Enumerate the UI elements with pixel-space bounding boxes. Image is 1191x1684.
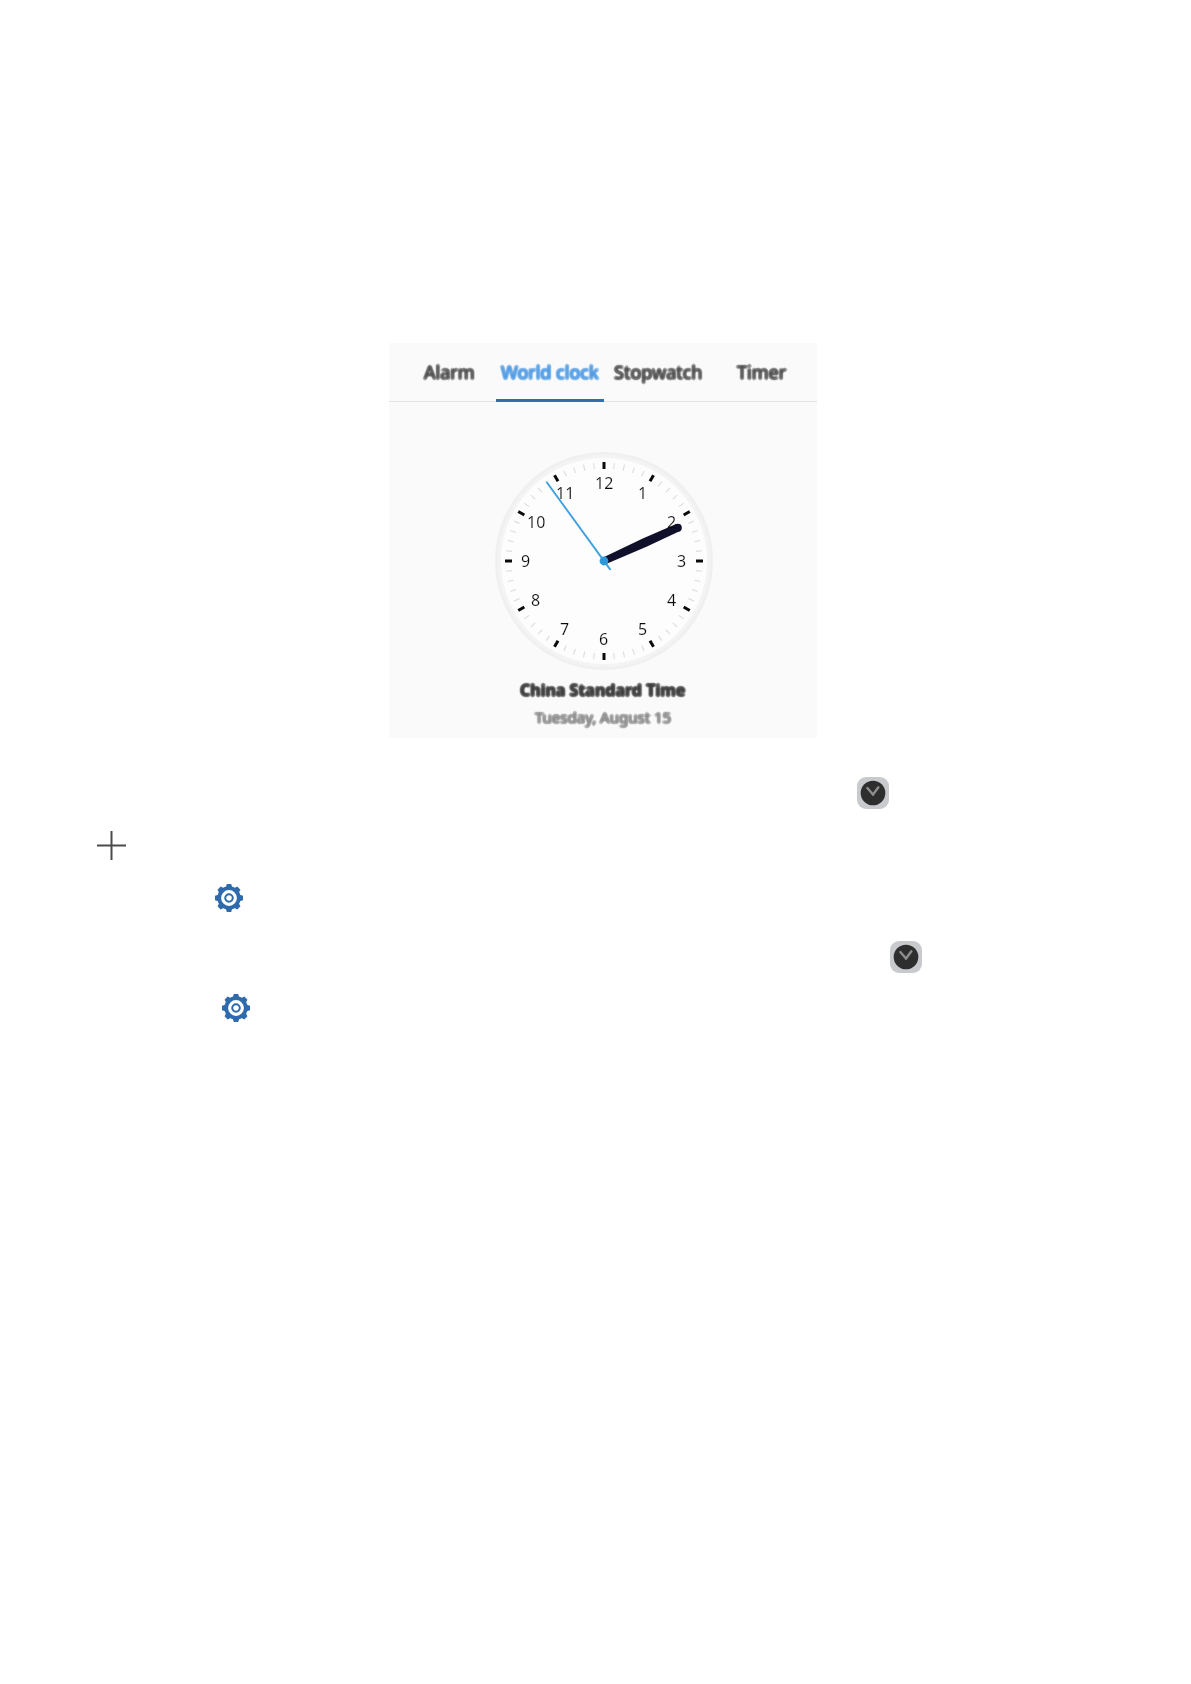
staticText: China Standard Time — [520, 677, 686, 699]
staticText: Alarm — [425, 359, 476, 384]
staticText: Stopwatch — [613, 361, 702, 386]
staticText: Timer — [738, 361, 788, 386]
staticText: China Standard Time — [521, 680, 687, 702]
staticText: World clock — [502, 360, 600, 385]
staticText: China Standard Time — [521, 680, 687, 702]
staticText: Alarm — [424, 361, 475, 386]
staticText: China Standard Time — [520, 679, 686, 701]
staticText: China Standard Time — [521, 678, 687, 700]
staticText: Alarm — [425, 361, 476, 386]
staticText: Timer — [737, 362, 787, 387]
staticText: Stopwatch — [613, 360, 702, 385]
staticText: 1 — [638, 482, 648, 504]
staticText: 8 — [531, 589, 541, 611]
staticText: 7 — [560, 618, 570, 640]
staticText: Tuesday, August 15 — [536, 706, 673, 726]
staticText: 4 — [667, 589, 677, 611]
staticText: 6 — [599, 628, 609, 650]
staticText: Stopwatch — [612, 360, 701, 385]
staticText: World clock — [501, 360, 599, 385]
staticText: 5 — [638, 618, 648, 640]
staticText: Timer — [736, 360, 786, 385]
button[interactable]: Alarm — [399, 343, 499, 402]
staticText: Tuesday, August 15 — [535, 705, 672, 725]
staticText: World clock — [500, 360, 598, 385]
staticText: Timer — [738, 359, 788, 384]
staticText: Tuesday, August 15 — [535, 706, 672, 726]
staticText: Tuesday, August 15 — [535, 709, 672, 729]
staticText: Timer — [739, 360, 789, 385]
staticText: Timer — [736, 361, 786, 386]
staticText: Tuesday, August 15 — [535, 708, 672, 728]
staticText: Stopwatch — [614, 361, 703, 386]
staticText: Timer — [736, 361, 786, 386]
button[interactable]: Timer — [712, 343, 812, 402]
staticText: Timer — [737, 359, 787, 384]
button[interactable]: Stopwatch — [604, 343, 712, 402]
staticText: China Standard Time — [519, 680, 685, 702]
staticText: Tuesday, August 15 — [537, 707, 674, 727]
staticText: China Standard Time — [518, 679, 684, 701]
staticText: Timer — [737, 358, 787, 383]
staticText: Tuesday, August 15 — [536, 708, 673, 728]
staticText: Alarm — [425, 359, 476, 384]
button[interactable]: Add — [97, 831, 126, 860]
staticText: Timer — [738, 359, 788, 384]
staticText: Stopwatch — [614, 360, 703, 385]
button[interactable]: Settings — [215, 884, 243, 912]
staticText: Alarm — [423, 360, 474, 385]
staticText: 10 — [527, 511, 546, 533]
staticText: World clock — [500, 361, 598, 386]
staticText: China Standard Time — [519, 678, 685, 700]
staticText: Alarm — [424, 359, 475, 384]
staticText: Alarm — [424, 362, 475, 387]
button[interactable]: Clock app — [890, 941, 922, 973]
staticText: World clock — [501, 359, 599, 384]
staticText: Tuesday, August 15 — [534, 708, 671, 728]
staticText: Alarm — [422, 360, 473, 385]
staticText: World clock — [500, 361, 598, 386]
staticText: World clock — [502, 361, 600, 386]
staticText: Tuesday, August 15 — [534, 708, 671, 728]
button[interactable]: World clock — [496, 343, 604, 402]
staticText: World clock — [502, 359, 600, 384]
staticText: Stopwatch — [614, 359, 703, 384]
staticText: Stopwatch — [616, 360, 705, 385]
staticText: Timer — [737, 360, 787, 385]
staticText: Alarm — [425, 360, 476, 385]
staticText: World clock — [500, 359, 598, 384]
staticText: Tuesday, August 15 — [535, 707, 672, 727]
staticText: Stopwatch — [613, 359, 702, 384]
staticText: Alarm — [423, 359, 474, 384]
staticText: World clock — [503, 360, 601, 385]
staticText: China Standard Time — [522, 679, 688, 701]
staticText: Stopwatch — [615, 359, 704, 384]
staticText: Stopwatch — [615, 361, 704, 386]
staticText: China Standard Time — [519, 680, 685, 702]
staticText: Alarm — [424, 358, 475, 383]
staticText: 2 — [667, 511, 677, 533]
staticText: Timer — [736, 359, 786, 384]
staticText: World clock — [501, 362, 599, 387]
staticText: Tuesday, August 15 — [536, 707, 673, 727]
staticText: 11 — [556, 482, 575, 504]
staticText: Stopwatch — [614, 362, 703, 387]
staticText: China Standard Time — [519, 678, 685, 700]
staticText: World clock — [499, 360, 597, 385]
staticText: China Standard Time — [521, 679, 687, 701]
button[interactable]: Settings — [222, 994, 250, 1022]
staticText: Stopwatch — [614, 358, 703, 383]
staticText: Stopwatch — [615, 361, 704, 386]
staticText: Stopwatch — [615, 359, 704, 384]
staticText: Tuesday, August 15 — [536, 708, 673, 728]
staticText: China Standard Time — [519, 679, 685, 701]
staticText: China Standard Time — [520, 678, 686, 700]
staticText: Stopwatch — [613, 359, 702, 384]
staticText: Tuesday, August 15 — [534, 706, 671, 726]
staticText: China Standard Time — [520, 681, 686, 703]
staticText: Alarm — [424, 360, 475, 385]
staticText: Tuesday, August 15 — [534, 707, 671, 727]
staticText: Stopwatch — [615, 360, 704, 385]
button[interactable]: Clock app — [857, 777, 889, 809]
staticText: World clock — [500, 359, 598, 384]
